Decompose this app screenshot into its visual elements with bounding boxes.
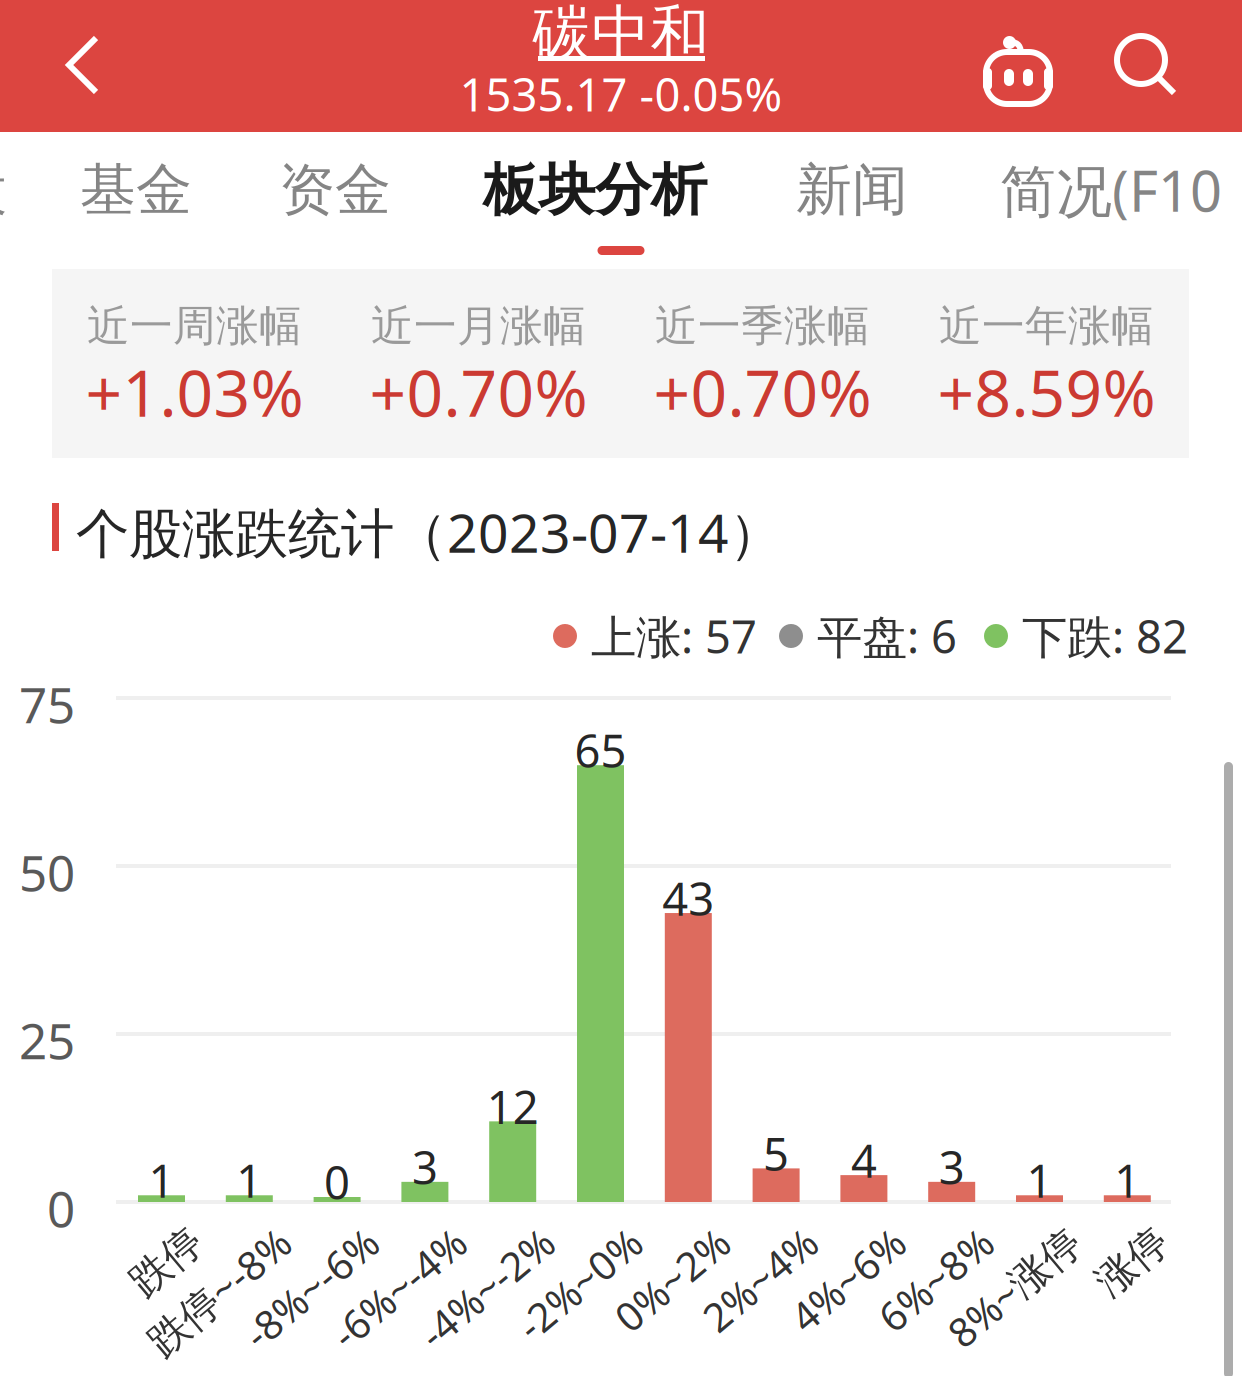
staticText: 43	[662, 868, 714, 928]
staticText: 0	[47, 1175, 75, 1241]
staticText: 5	[763, 1123, 789, 1183]
staticText: 股	[0, 156, 7, 224]
button[interactable]: Search	[1087, 0, 1207, 132]
staticText: -8%~-6%	[198, 1214, 359, 1267]
staticText: 涨停	[1069, 1216, 1149, 1265]
staticText: 3	[412, 1137, 438, 1197]
staticText: 75	[19, 671, 75, 737]
staticText: +0.70%	[653, 349, 871, 434]
staticText: 基金	[80, 156, 192, 224]
staticText: 3	[939, 1137, 965, 1197]
staticText: 4%~6%	[751, 1214, 886, 1267]
button[interactable]: 新闻	[797, 132, 907, 265]
staticText: 跌停	[103, 1216, 183, 1265]
staticText: 近一月涨幅	[371, 300, 586, 352]
staticText: +0.70%	[369, 349, 587, 434]
staticText: 50	[19, 839, 75, 905]
staticText: 1	[1026, 1150, 1052, 1210]
staticText: 近一周涨幅	[87, 300, 302, 352]
button[interactable]: 板块分析	[487, 132, 703, 265]
staticText: 资金	[279, 156, 391, 224]
staticText: 12	[487, 1076, 539, 1136]
staticText: 0	[324, 1152, 350, 1212]
staticText: +1.03%	[85, 349, 303, 434]
staticText: 下跌: 82	[1022, 606, 1188, 666]
staticText: 6%~8%	[839, 1214, 974, 1267]
staticText: 8%~涨停	[902, 1214, 1061, 1267]
staticText: 0%~2%	[575, 1214, 710, 1267]
staticText: -4%~-2%	[374, 1214, 535, 1267]
staticText: 个股涨跌统计（2023-07-14）	[76, 497, 782, 567]
staticText: 碳中和	[532, 0, 709, 69]
button[interactable]: Back	[23, 0, 143, 131]
staticText: 近一年涨幅	[939, 300, 1154, 352]
staticText: 板块分析	[483, 156, 707, 224]
staticText: -6%~-4%	[286, 1214, 447, 1267]
staticText: 2%~4%	[663, 1214, 798, 1267]
staticText: 1535.17 -0.05%	[459, 64, 782, 124]
staticText: 新闻	[796, 156, 908, 224]
staticText: 4	[851, 1130, 877, 1190]
staticText: 简况(F10	[1000, 153, 1222, 227]
staticText: 65	[574, 720, 626, 780]
button[interactable]: 股	[0, 132, 7, 194]
staticText: 1	[236, 1150, 262, 1210]
staticText: 近一季涨幅	[655, 300, 870, 352]
button[interactable]: 基金	[84, 132, 188, 265]
button[interactable]: 资金	[283, 132, 387, 265]
staticText: 跌停~-8%	[99, 1214, 271, 1267]
staticText: 上涨: 57	[591, 606, 757, 666]
staticText: 1	[148, 1150, 174, 1210]
button[interactable]: 简况(F10	[981, 132, 1241, 265]
staticText: 25	[19, 1007, 75, 1073]
staticText: 平盘: 6	[817, 606, 957, 666]
staticText: -2%~0%	[474, 1214, 622, 1267]
staticText: +8.59%	[937, 349, 1155, 434]
staticText: 1	[1114, 1150, 1140, 1210]
button[interactable]: 碳中和	[411, 0, 831, 132]
button[interactable]: AI assistant	[958, 0, 1078, 132]
